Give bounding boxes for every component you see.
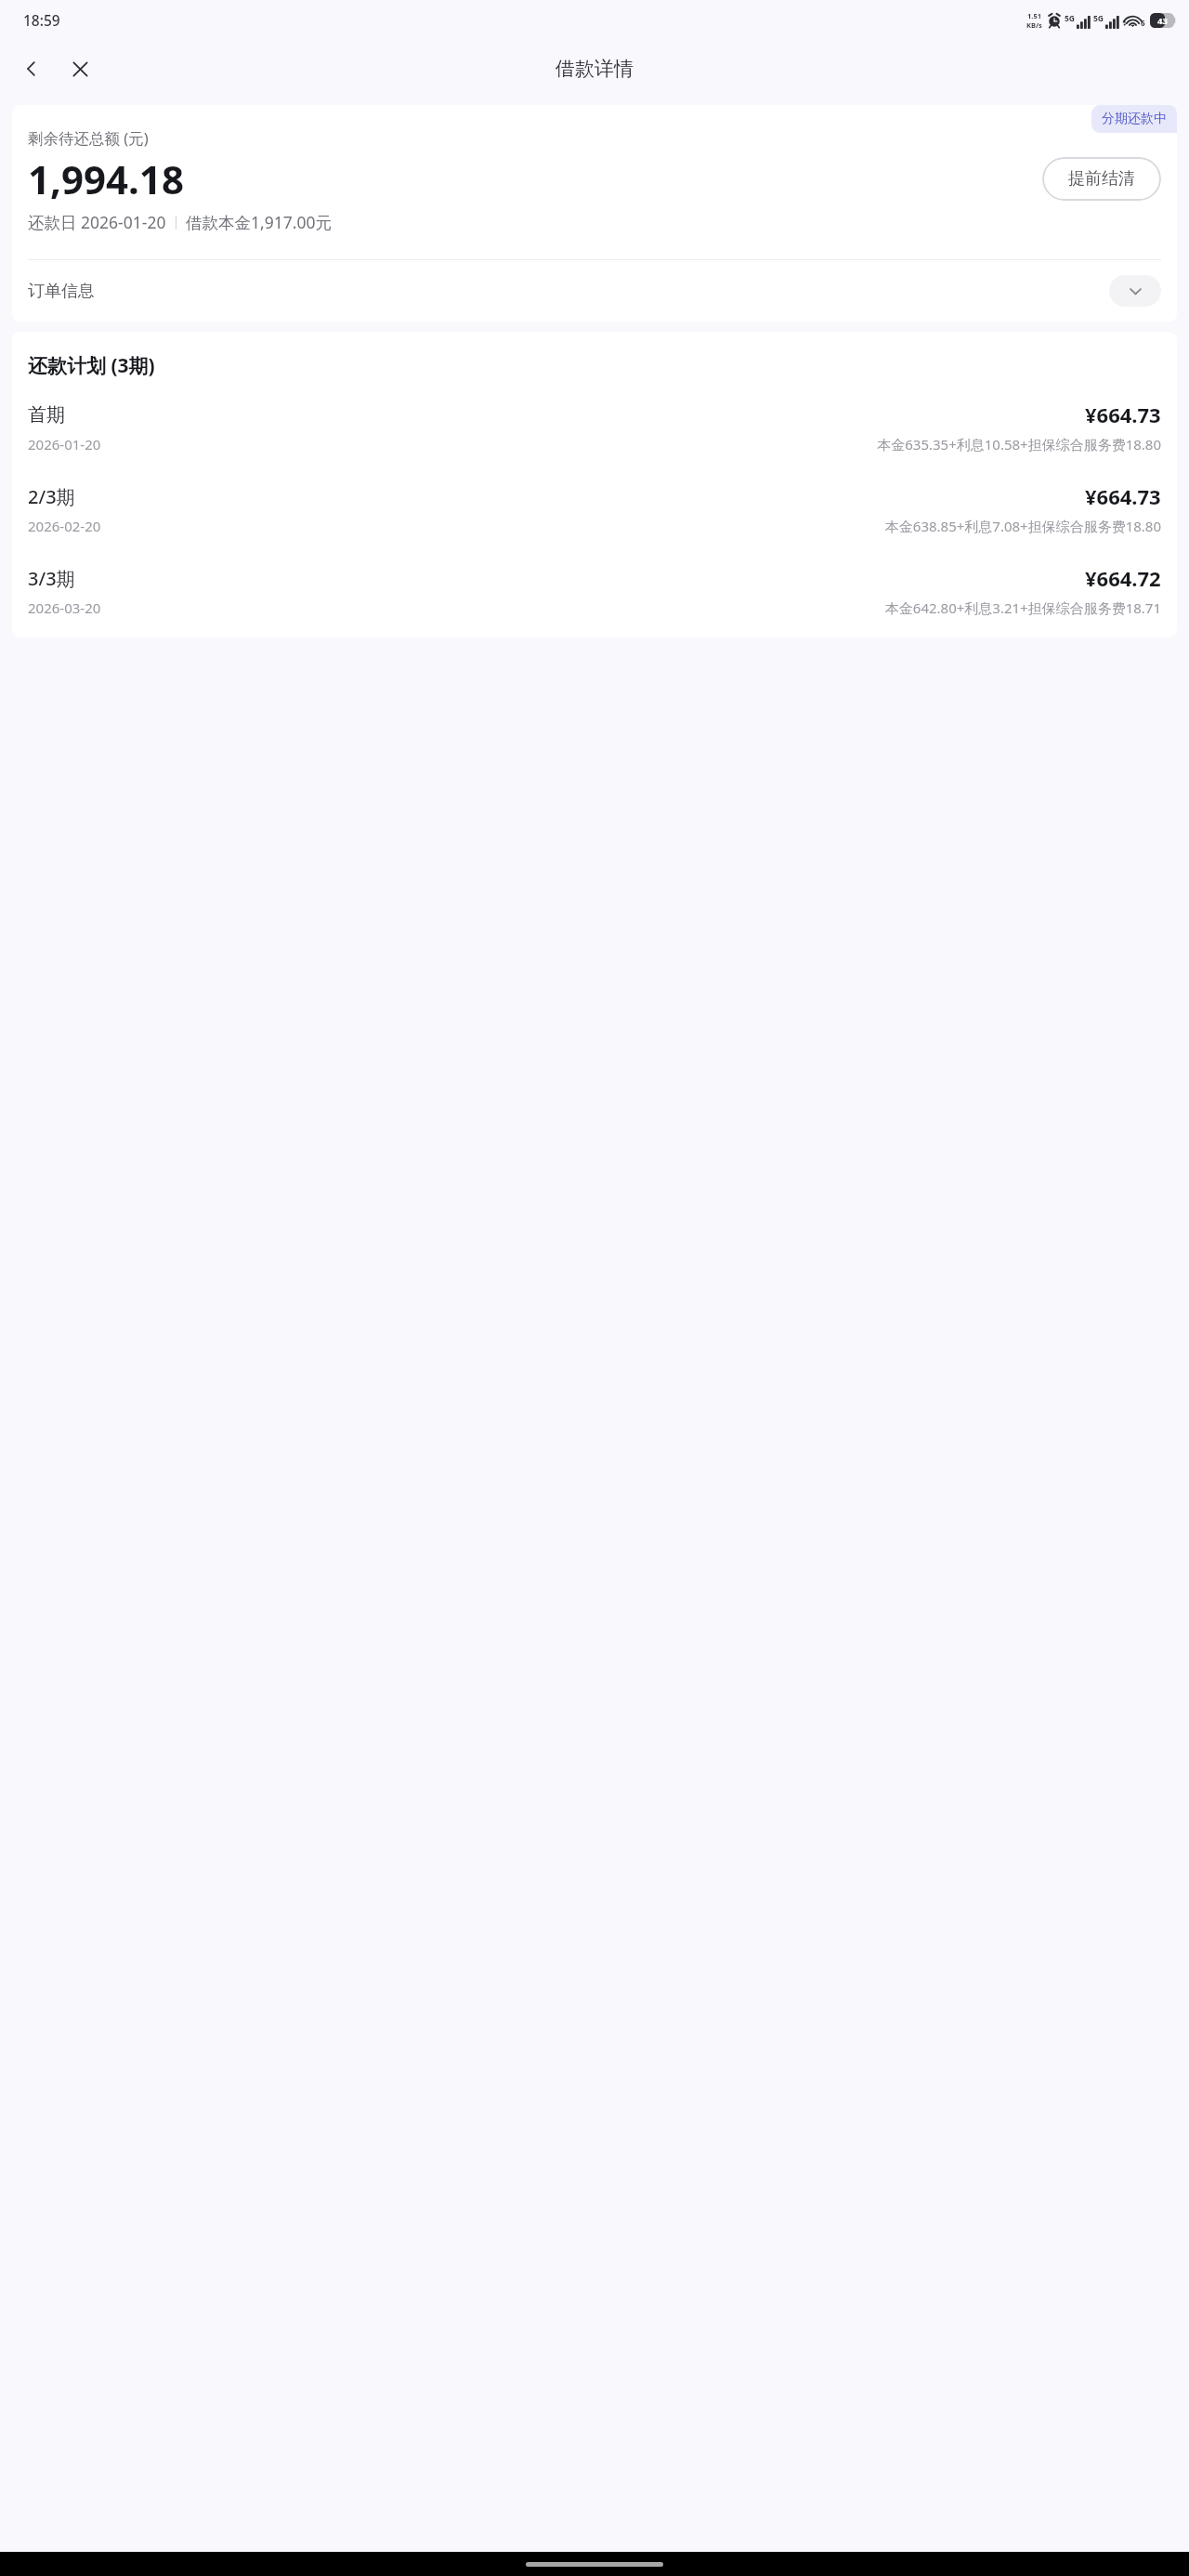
staticText: 提前结清 — [1068, 168, 1135, 190]
staticText: 18:59 — [23, 10, 60, 30]
staticText: KB/s — [1026, 20, 1042, 30]
staticText: 6 — [1141, 18, 1145, 28]
staticText: 剩余待还总额 (元) — [28, 127, 149, 149]
staticText: 本金635.35+利息10.58+担保综合服务费18.80 — [877, 435, 1161, 453]
staticText: 43 — [1157, 15, 1168, 27]
staticText: 本金638.85+利息7.08+担保综合服务费18.80 — [884, 517, 1161, 535]
staticText: ¥664.72 — [1085, 564, 1161, 592]
staticText: 2026-01-20 — [28, 435, 101, 453]
staticText: 2026-02-20 — [28, 517, 101, 535]
staticText: 还款日 2026-01-20 — [28, 211, 166, 233]
button[interactable]: 首期 — [28, 401, 1161, 453]
staticText: 2026-03-20 — [28, 598, 101, 617]
staticText: 5G — [1065, 13, 1076, 24]
button[interactable]: 3/3期 — [28, 564, 1161, 617]
staticText: 2/3期 — [28, 484, 75, 509]
button[interactable]: Back — [11, 48, 52, 89]
button[interactable]: 订单信息 — [12, 260, 1177, 322]
staticText: 首期 — [28, 403, 65, 427]
staticText: 订单信息 — [28, 281, 95, 302]
staticText: 还款计划 (3期) — [28, 352, 155, 379]
staticText: 借款本金1,917.00元 — [186, 211, 332, 233]
staticText: ¥664.73 — [1085, 401, 1161, 428]
button[interactable]: 提前结清 — [1042, 157, 1161, 201]
staticText: 借款详情 — [555, 57, 634, 81]
button[interactable]: 2/3期 — [28, 482, 1161, 535]
staticText: 3/3期 — [28, 566, 75, 591]
staticText: 1,994.18 — [28, 152, 184, 205]
staticText: ¥664.73 — [1085, 482, 1161, 510]
button[interactable]: Close — [59, 48, 100, 89]
staticText: 本金642.80+利息3.21+担保综合服务费18.71 — [884, 598, 1161, 617]
staticText: 5G — [1093, 13, 1104, 24]
staticText: 分期还款中 — [1102, 111, 1167, 127]
staticText: 1.51 — [1027, 11, 1041, 20]
